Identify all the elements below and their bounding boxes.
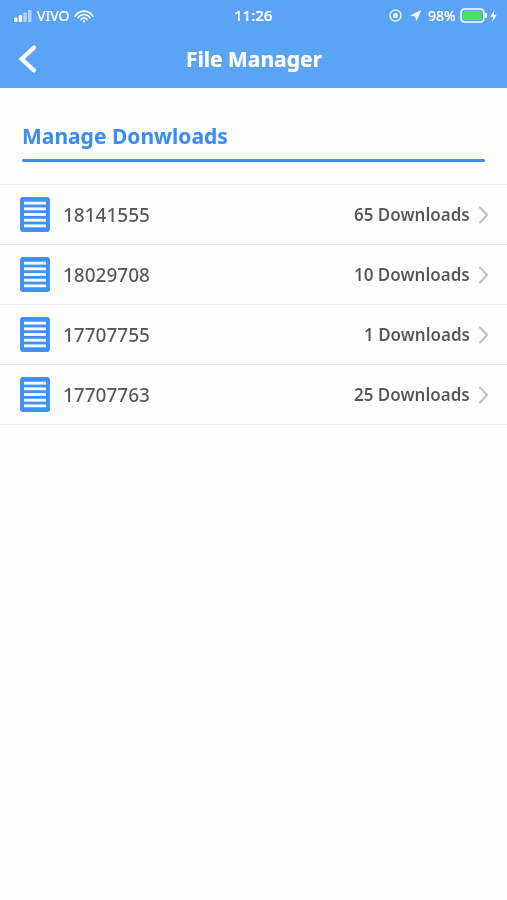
staticText: VIVO bbox=[37, 6, 70, 25]
button[interactable]: 18141555 bbox=[0, 185, 507, 244]
staticText: 25 Downloads bbox=[354, 383, 470, 406]
staticText: 11:26 bbox=[234, 5, 273, 25]
staticText: 17707763 bbox=[63, 382, 150, 408]
button[interactable]: 17707755 bbox=[0, 305, 507, 364]
button[interactable]: 17707763 bbox=[0, 365, 507, 424]
button[interactable]: 18029708 bbox=[0, 245, 507, 304]
staticText: 98% bbox=[428, 6, 456, 25]
staticText: File Manager bbox=[186, 45, 322, 74]
staticText: 10 Downloads bbox=[354, 263, 470, 286]
staticText: 17707755 bbox=[63, 322, 150, 348]
button[interactable]: Back bbox=[0, 31, 56, 87]
staticText: 18141555 bbox=[63, 202, 150, 228]
staticText: Manage Donwloads bbox=[22, 122, 228, 151]
staticText: 18029708 bbox=[63, 262, 150, 288]
staticText: 1 Downloads bbox=[364, 323, 470, 346]
staticText: 65 Downloads bbox=[354, 203, 470, 226]
